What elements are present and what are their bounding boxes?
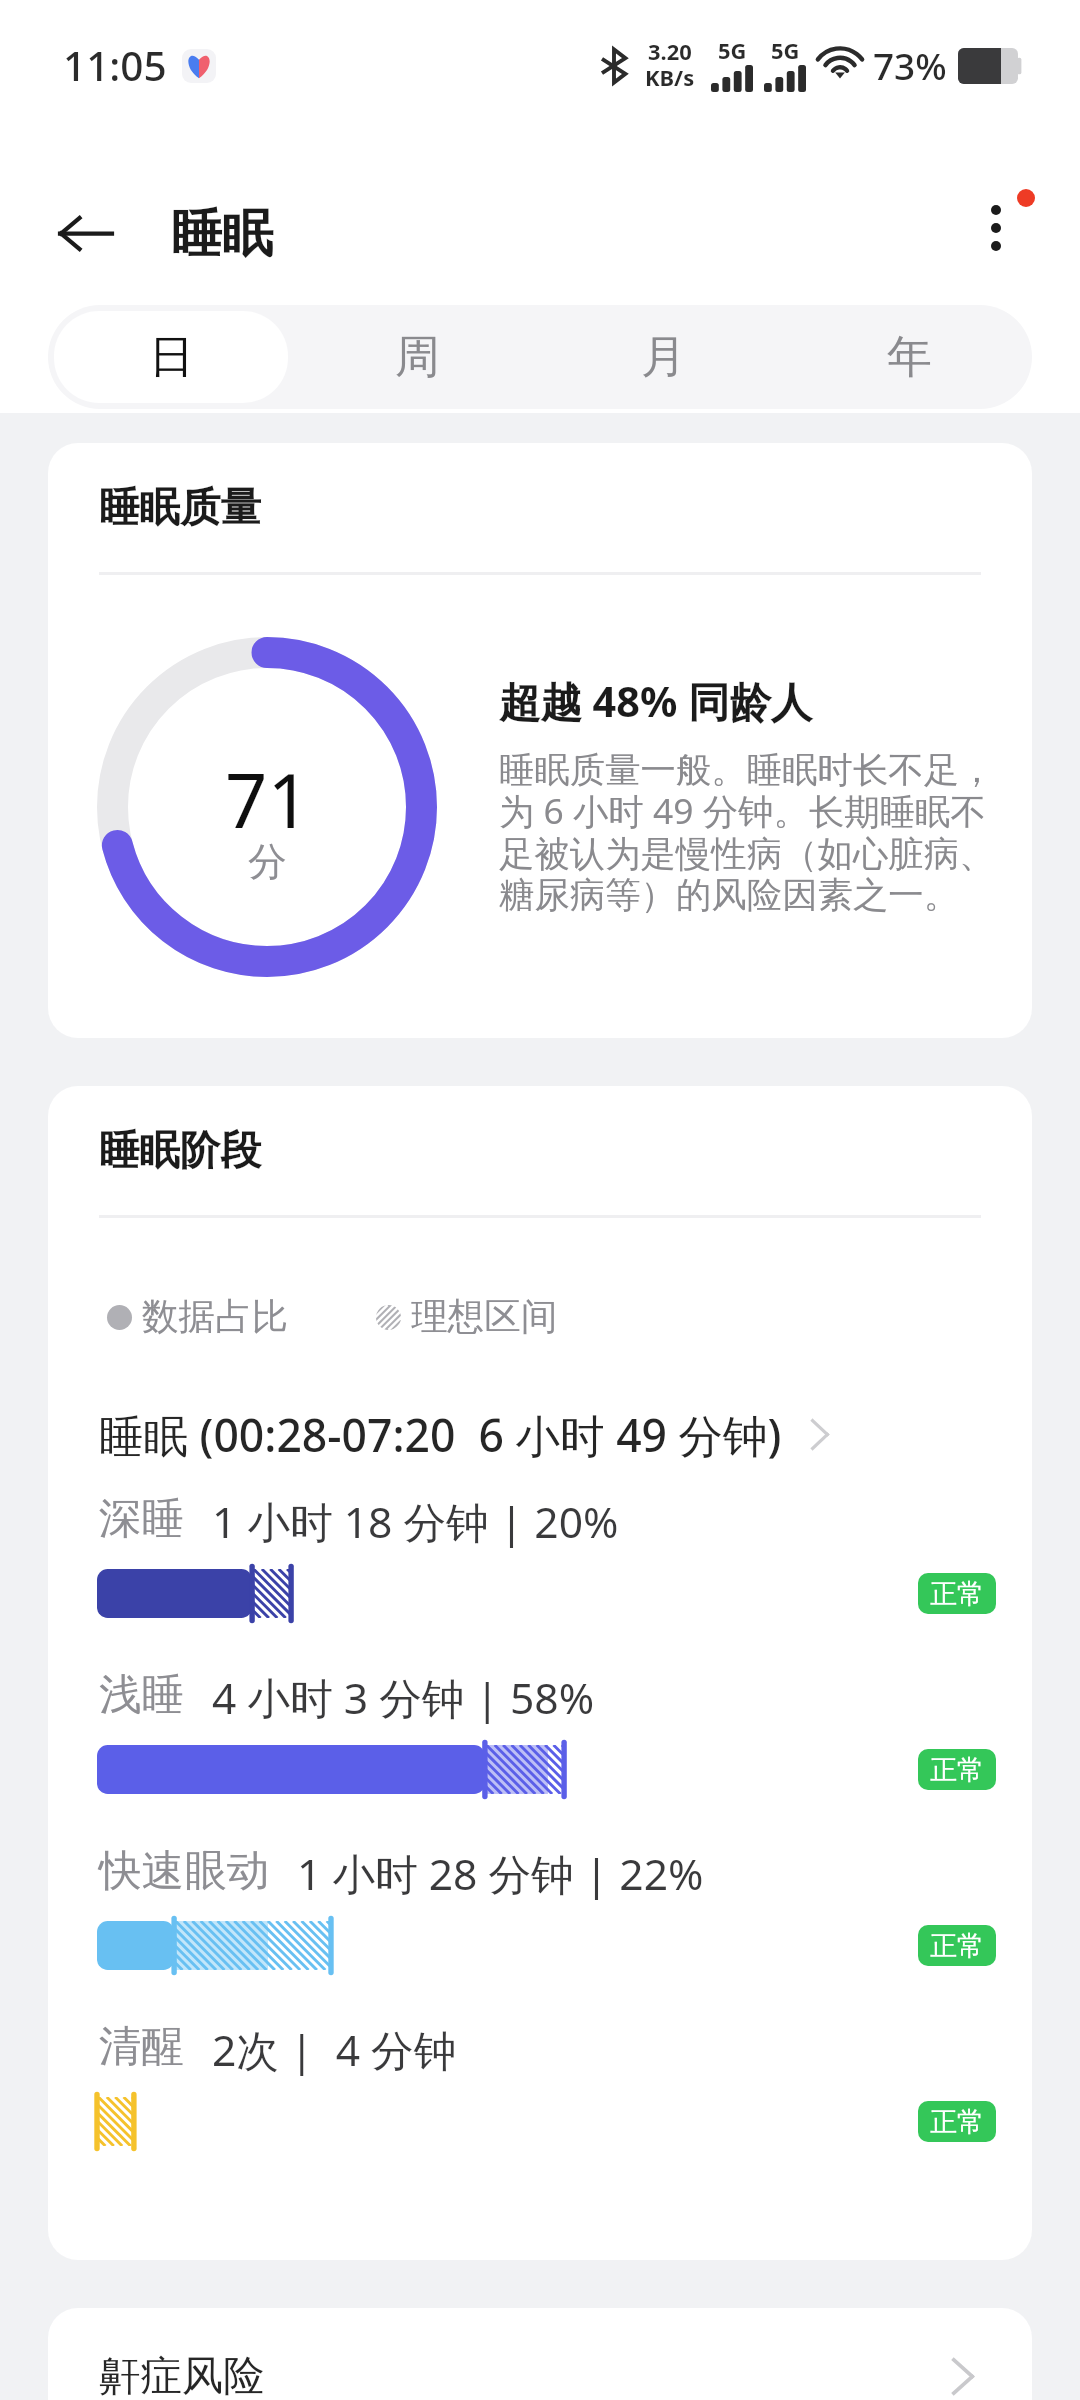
staticText: 1 小时 28 分钟 | 22% <box>297 1844 704 1902</box>
staticText: 睡眠质量 <box>99 482 261 533</box>
staticText: 超越 48% 同龄人 <box>499 673 813 730</box>
staticText: 5G <box>771 39 800 65</box>
staticText: 睡眠 <box>171 202 273 266</box>
staticText: 深睡 <box>99 1492 185 1546</box>
staticText: 浅睡 <box>99 1668 185 1722</box>
button[interactable]: 鼾症风险 <box>48 2308 1032 2400</box>
staticText: 睡眠质量一般。睡眠时长不足，为 6 小时 49 分钟。长期睡眠不足被认为是慢性病… <box>499 751 1011 917</box>
staticText: 正常 <box>930 2105 984 2139</box>
staticText: 正常 <box>930 1577 984 1611</box>
staticText: 正常 <box>930 1929 984 1963</box>
staticText: 睡眠 (00:28-07:20 6 小时 49 分钟) <box>99 1404 782 1465</box>
button[interactable]: 睡眠 (00:28-07:20 6 小时 49 分钟) <box>99 1404 1032 1465</box>
staticText: 年 <box>887 329 932 386</box>
staticText: 数据占比 <box>142 1294 289 1340</box>
staticText: 日 <box>149 329 194 386</box>
staticText: 71 <box>225 767 310 845</box>
staticText: 11:05 <box>63 38 167 93</box>
staticText: 周 <box>395 329 440 386</box>
staticText: 理想区间 <box>411 1294 558 1340</box>
staticText: KB/s <box>645 66 695 92</box>
staticText: 分 <box>248 844 287 886</box>
button[interactable]: 日 <box>54 311 288 403</box>
staticText: 快速眼动 <box>99 1844 270 1898</box>
staticText: 鼾症风险 <box>99 2350 952 2400</box>
staticText: 月 <box>641 329 686 386</box>
staticText: 清醒 <box>99 2020 185 2074</box>
staticText: 4 小时 3 分钟 | 58% <box>212 1668 595 1726</box>
staticText: 睡眠阶段 <box>99 1125 261 1176</box>
staticText: 73% <box>873 41 947 91</box>
button[interactable]: More options <box>981 205 1041 265</box>
staticText: 2次 | 4 分钟 <box>212 2020 457 2078</box>
button[interactable]: 周 <box>300 311 534 403</box>
button[interactable]: 年 <box>792 311 1026 403</box>
button[interactable]: 月 <box>546 311 780 403</box>
staticText: 1 小时 18 分钟 | 20% <box>212 1492 619 1550</box>
staticText: 5G <box>718 39 747 65</box>
staticText: 3.20 <box>648 40 692 66</box>
button[interactable]: Back <box>59 213 113 255</box>
staticText: 正常 <box>930 1753 984 1787</box>
